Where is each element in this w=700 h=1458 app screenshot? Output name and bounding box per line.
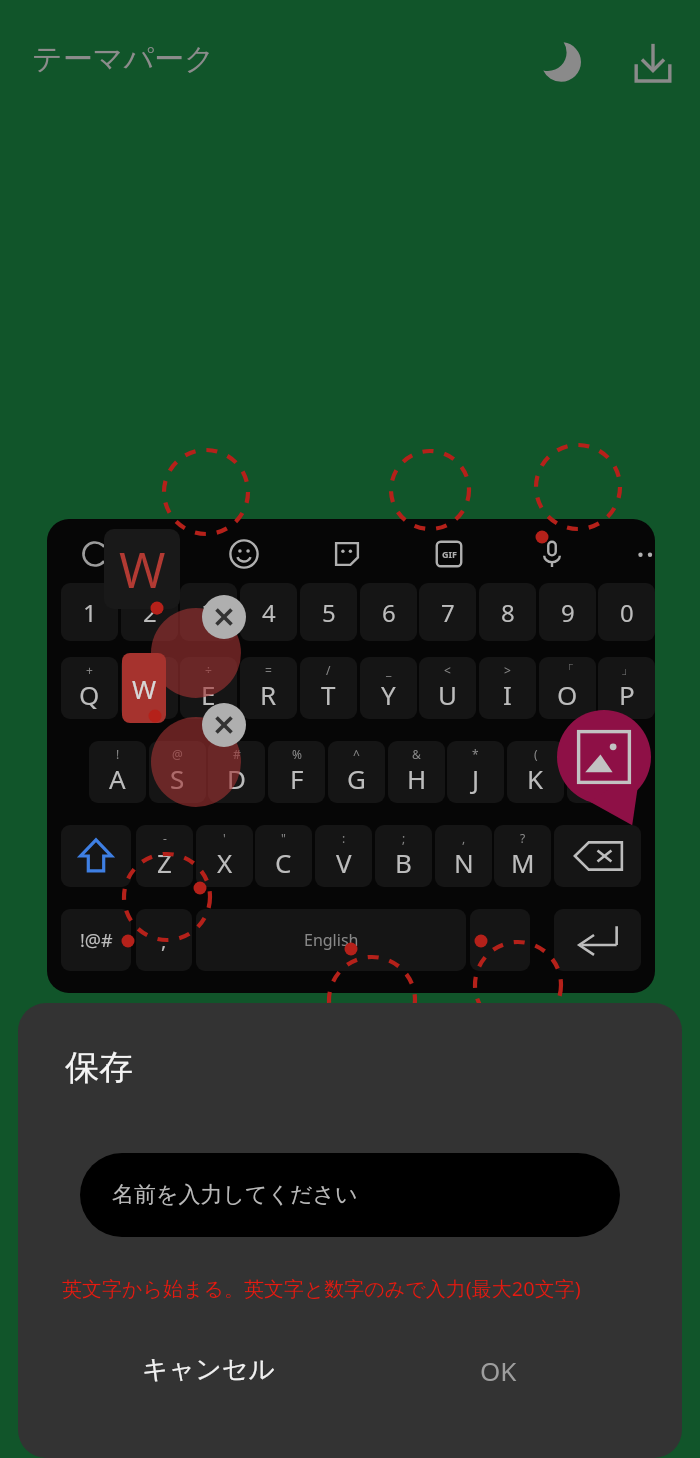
button[interactable]: Download	[624, 34, 682, 92]
staticText: English	[304, 929, 359, 951]
button[interactable]: #	[208, 741, 265, 803]
button[interactable]: >	[479, 657, 536, 719]
button[interactable]: ×	[121, 657, 178, 719]
button[interactable]: Voice input	[535, 537, 569, 571]
button[interactable]: @	[149, 741, 206, 803]
staticText: K	[527, 761, 544, 796]
staticText: J	[472, 761, 480, 796]
button[interactable]: Shift	[61, 825, 131, 887]
staticText: GIF	[442, 548, 457, 560]
staticText: A	[109, 761, 126, 796]
staticText: F	[290, 761, 304, 796]
staticText: T	[321, 677, 336, 712]
button[interactable]: Remove marker	[202, 595, 246, 639]
staticText: V	[336, 845, 352, 880]
staticText: 「	[562, 662, 574, 677]
button[interactable]: Backspace	[554, 825, 641, 887]
button[interactable]: キャンセル	[130, 1341, 288, 1398]
button[interactable]: ÷	[180, 657, 237, 719]
button[interactable]: 8	[479, 583, 536, 641]
staticText: 1	[83, 596, 97, 629]
button[interactable]: OK	[468, 1341, 529, 1400]
button[interactable]: /	[300, 657, 357, 719]
staticText: B	[395, 845, 412, 880]
button[interactable]: ^	[328, 741, 385, 803]
button[interactable]: "	[255, 825, 312, 887]
button[interactable]: 6	[360, 583, 417, 641]
staticText: '	[223, 830, 226, 846]
staticText: L	[589, 761, 603, 796]
button[interactable]: Enter	[554, 909, 641, 971]
staticText: キャンセル	[142, 1353, 276, 1386]
button[interactable]: Emoji	[227, 537, 261, 571]
button[interactable]: 名前を入力してください	[80, 1153, 620, 1237]
staticText: 0	[620, 596, 634, 629]
button[interactable]: Insert image	[558, 713, 658, 813]
button[interactable]: ;	[375, 825, 432, 887]
staticText: D	[227, 761, 246, 796]
staticText: *	[472, 746, 479, 762]
button[interactable]: :	[315, 825, 372, 887]
button[interactable]: _	[360, 657, 417, 719]
staticText: !	[116, 746, 120, 762]
button[interactable]: W	[122, 653, 166, 723]
button[interactable]: (	[507, 741, 564, 803]
staticText: #	[233, 746, 241, 762]
button[interactable]: Sticker	[330, 537, 364, 571]
staticText: C	[275, 845, 292, 880]
button[interactable]: 1	[61, 583, 118, 641]
button[interactable]: 0	[598, 583, 655, 641]
staticText: N	[454, 845, 474, 880]
staticText: _	[386, 662, 392, 678]
staticText: +	[86, 662, 93, 678]
button[interactable]: %	[268, 741, 325, 803]
staticText: テーマパーク	[32, 40, 215, 78]
button[interactable]: ,	[136, 909, 192, 971]
button[interactable]: '	[196, 825, 253, 887]
staticText: 保存	[65, 1046, 133, 1089]
button[interactable]: .	[470, 909, 530, 971]
button[interactable]: テーマパーク	[30, 38, 217, 80]
button[interactable]: 5	[300, 583, 357, 641]
staticText: W	[119, 535, 166, 603]
button[interactable]: Space	[196, 909, 466, 971]
staticText: 7	[441, 596, 455, 629]
button[interactable]: )	[567, 741, 624, 803]
staticText: Q	[79, 677, 100, 712]
button[interactable]: 「	[539, 657, 596, 719]
button[interactable]: Dark mode	[530, 32, 590, 92]
button[interactable]: 7	[419, 583, 476, 641]
staticText: ,	[462, 830, 466, 846]
button[interactable]: &	[388, 741, 445, 803]
button[interactable]: 4	[240, 583, 297, 641]
staticText: ?	[520, 830, 526, 846]
button[interactable]: =	[240, 657, 297, 719]
button[interactable]: More options	[633, 537, 655, 571]
button[interactable]: ?	[494, 825, 551, 887]
button[interactable]: Clipboard	[78, 537, 112, 571]
button[interactable]: !@#	[61, 909, 131, 971]
button[interactable]: -	[136, 825, 193, 887]
button[interactable]: +	[61, 657, 118, 719]
staticText: I	[503, 677, 512, 712]
staticText: /	[326, 662, 331, 678]
button[interactable]: 3	[180, 583, 237, 641]
staticText: 3	[202, 596, 216, 629]
staticText: 4	[262, 596, 276, 629]
staticText: "	[281, 830, 286, 846]
staticText: %	[292, 746, 302, 762]
button[interactable]: <	[419, 657, 476, 719]
button[interactable]: !	[89, 741, 146, 803]
button[interactable]: GIF	[432, 537, 466, 571]
button[interactable]: 」	[598, 657, 655, 719]
button[interactable]: 2	[121, 583, 178, 641]
button[interactable]: *	[447, 741, 504, 803]
button[interactable]: Remove marker	[202, 703, 246, 747]
button[interactable]: 9	[539, 583, 596, 641]
staticText: S	[170, 761, 185, 796]
button[interactable]: ,	[435, 825, 492, 887]
staticText: )	[594, 746, 598, 762]
staticText: Y	[381, 677, 396, 712]
staticText: G	[347, 761, 366, 796]
